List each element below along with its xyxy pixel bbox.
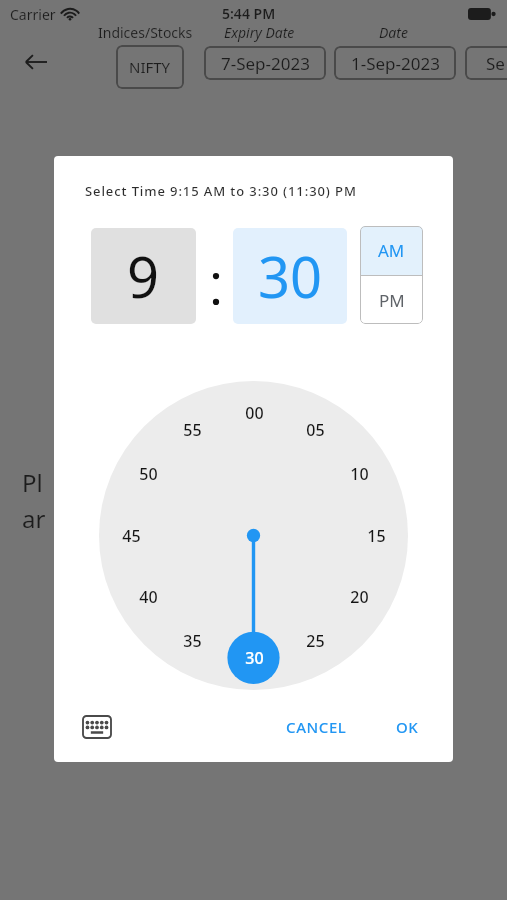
button[interactable]: 55	[175, 418, 209, 442]
staticText: OK	[396, 717, 419, 737]
staticText: 15	[367, 525, 386, 547]
staticText: 5:44 PM	[222, 4, 276, 23]
staticText: 30	[258, 238, 323, 314]
button[interactable]: PM	[360, 276, 423, 324]
staticText: 7-Sep-2023	[221, 52, 310, 75]
button[interactable]: 50	[131, 462, 165, 486]
staticText: 10	[350, 463, 369, 485]
staticText: 40	[139, 586, 158, 608]
staticText: CANCEL	[286, 717, 347, 737]
staticText: Carrier	[10, 5, 56, 24]
staticText: 45	[122, 525, 141, 547]
staticText: 05	[306, 419, 325, 441]
button[interactable]: AM	[360, 226, 423, 275]
button[interactable]: NIFTY	[116, 45, 184, 89]
button[interactable]: 40	[131, 585, 165, 609]
staticText: 55	[183, 419, 202, 441]
staticText: Select Time 9:15 AM to 3:30 (11:30) PM	[85, 182, 357, 200]
button[interactable]: 1-Sep-2023	[334, 46, 456, 80]
button[interactable]: CANCEL	[270, 710, 362, 744]
staticText: ar	[22, 502, 46, 535]
staticText: 00	[245, 402, 264, 424]
staticText: Se	[486, 52, 505, 75]
button[interactable]: 30	[233, 228, 347, 324]
button[interactable]: 25	[298, 629, 332, 653]
staticText: 20	[350, 586, 369, 608]
staticText: Indices/Stocks	[98, 23, 193, 42]
button[interactable]: 30	[237, 646, 271, 670]
button[interactable]: Switch to text input	[80, 711, 114, 743]
staticText: Expiry Date	[224, 23, 295, 42]
staticText: 35	[183, 630, 202, 652]
staticText: 50	[139, 463, 158, 485]
button[interactable]: 05	[298, 418, 332, 442]
button[interactable]: 35	[175, 629, 209, 653]
staticText: 1-Sep-2023	[351, 52, 440, 75]
button[interactable]: 20	[342, 585, 376, 609]
staticText: Date	[379, 23, 408, 42]
staticText: 30	[245, 647, 264, 669]
button[interactable]: 00	[237, 401, 271, 425]
button[interactable]: Se	[465, 46, 507, 80]
button[interactable]: 45	[114, 524, 148, 548]
button[interactable]: 10	[342, 462, 376, 486]
button[interactable]: OK	[384, 710, 430, 744]
staticText: 9	[127, 238, 160, 314]
staticText: 25	[306, 630, 325, 652]
button[interactable]: 9	[91, 228, 196, 324]
button[interactable]: 15	[359, 524, 393, 548]
button[interactable]: 7-Sep-2023	[204, 46, 326, 80]
button[interactable]: Back	[16, 42, 56, 82]
staticText: AM	[378, 239, 405, 262]
staticText: Pl	[22, 466, 43, 499]
staticText: PM	[379, 289, 405, 312]
staticText: NIFTY	[129, 57, 171, 77]
